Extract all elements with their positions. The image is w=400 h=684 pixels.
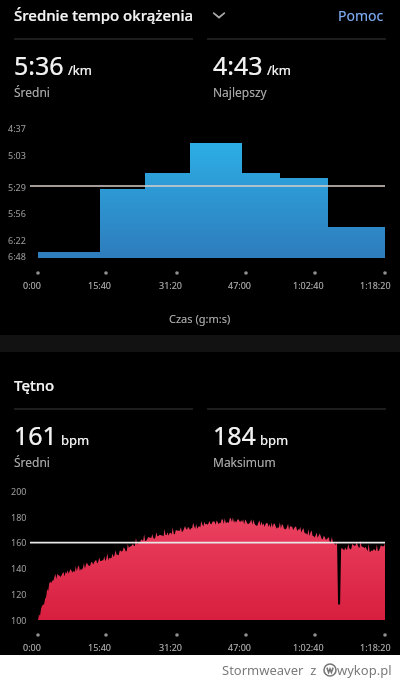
staticText: 1:18:20 <box>360 641 391 653</box>
staticText: 15:40 <box>88 279 112 291</box>
staticText: Maksimum <box>213 454 276 470</box>
staticText: bpm <box>61 431 90 449</box>
staticText: Stormweaver z <box>222 661 323 679</box>
staticText: 47:00 <box>228 641 252 653</box>
staticText: Średni <box>14 84 50 100</box>
staticText: 5:56 <box>8 207 26 219</box>
staticText: 120 <box>11 588 27 600</box>
staticText: 100 <box>11 614 27 626</box>
button[interactable]: Pomoc <box>334 2 388 29</box>
staticText: wykop.pl <box>337 661 392 679</box>
staticText: Najlepszy <box>213 84 267 100</box>
staticText: 31:20 <box>159 641 183 653</box>
staticText: 160 <box>11 536 27 548</box>
staticText: 184 <box>213 418 256 452</box>
staticText: /km <box>267 61 291 79</box>
staticText: Tętno <box>14 375 55 395</box>
staticText: 161 <box>14 418 57 452</box>
staticText: 15:40 <box>88 641 112 653</box>
staticText: Średnie tempo okrążenia <box>14 5 194 25</box>
staticText: 5:36 <box>14 48 64 82</box>
staticText: /km <box>68 61 92 79</box>
staticText: Pomoc <box>338 6 384 25</box>
staticText: 200 <box>11 485 27 497</box>
button[interactable]: Rozwiń <box>208 4 230 26</box>
staticText: 6:22 <box>8 234 26 246</box>
staticText: 5:03 <box>8 149 26 161</box>
staticText: 5:29 <box>8 181 26 193</box>
staticText: 1:18:20 <box>360 279 391 291</box>
staticText: 31:20 <box>159 279 183 291</box>
staticText: 180 <box>11 511 27 523</box>
staticText: 0:00 <box>23 279 41 291</box>
staticText: 47:00 <box>228 279 252 291</box>
staticText: bpm <box>260 431 289 449</box>
staticText: 4:37 <box>8 122 26 134</box>
staticText: Średni <box>14 454 50 470</box>
staticText: 4:43 <box>213 48 263 82</box>
staticText: 6:48 <box>8 250 26 262</box>
staticText: Czas (g:m:s) <box>169 311 231 326</box>
staticText: 140 <box>11 562 27 574</box>
staticText: 1:02:40 <box>293 279 324 291</box>
staticText: 0:00 <box>23 641 41 653</box>
staticText: 1:02:40 <box>293 641 324 653</box>
